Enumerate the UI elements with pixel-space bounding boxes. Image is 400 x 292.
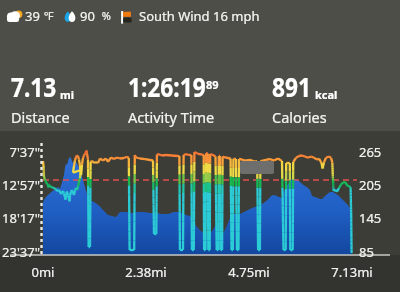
staticText: 12'57" [0, 176, 40, 194]
staticText: 1:26:19 [128, 68, 206, 105]
staticText: 265 [359, 143, 382, 161]
button[interactable]: 1:26:19 [117, 68, 261, 127]
staticText: 145 [359, 209, 382, 227]
button[interactable]: 7.13 [0, 68, 117, 127]
staticText: 2.38mi [116, 263, 176, 281]
staticText: 7.13 [11, 68, 56, 105]
staticText: Activity Time [128, 107, 215, 127]
staticText: 90 [80, 7, 99, 25]
staticText: 39 [25, 7, 44, 25]
button[interactable]: 891 [261, 68, 400, 127]
staticText: 85 [359, 243, 374, 261]
staticText: 891 [272, 68, 311, 105]
staticText: % [99, 8, 112, 23]
button[interactable]: Weather [3, 7, 54, 25]
staticText: Distance [11, 107, 70, 127]
staticText: Calories [272, 107, 327, 127]
button[interactable]: Humidity [61, 7, 112, 25]
staticText: kcal [315, 87, 338, 102]
staticText: 4.75mi [219, 263, 279, 281]
staticText: 7.13mi [322, 263, 382, 281]
staticText: 7'37" [0, 143, 40, 161]
staticText: 205 [359, 176, 382, 194]
staticText: 89 [206, 77, 219, 92]
staticText: 18'17" [0, 209, 40, 227]
staticText: ℉ [44, 8, 54, 23]
staticText: 0mi [13, 263, 73, 281]
button[interactable]: Wind [120, 7, 260, 25]
staticText: mi [60, 87, 75, 102]
staticText: South Wind 16 mph [139, 7, 260, 25]
staticText: 23'37" [0, 243, 40, 261]
